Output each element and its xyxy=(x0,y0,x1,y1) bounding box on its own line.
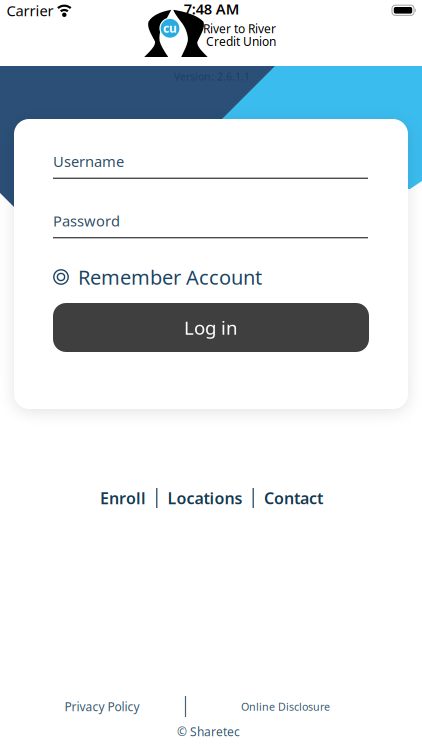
button[interactable]: Password xyxy=(53,211,368,238)
staticText: Privacy Policy xyxy=(64,698,139,714)
staticText: © Sharetec xyxy=(177,723,240,739)
staticText: Enroll xyxy=(100,487,146,509)
staticText: Contact xyxy=(264,487,323,509)
button[interactable]: Remember Account xyxy=(53,264,369,290)
staticText: Online Disclosure xyxy=(241,699,330,714)
staticText: River to River xyxy=(203,20,276,36)
button[interactable]: Online Disclosure xyxy=(241,699,330,714)
staticText: cu xyxy=(163,20,177,36)
staticText: 7:48 AM xyxy=(184,0,240,19)
button[interactable]: Privacy Policy xyxy=(64,698,139,714)
button[interactable]: Contact xyxy=(264,487,323,509)
button[interactable]: Log in xyxy=(53,303,369,352)
button[interactable]: Locations xyxy=(167,487,242,509)
staticText: Version: 2.6.1.1 xyxy=(174,69,250,83)
button[interactable]: Username xyxy=(53,152,368,179)
staticText: Locations xyxy=(167,487,242,509)
staticText: Credit Union xyxy=(206,33,276,49)
staticText: Log in xyxy=(184,315,238,340)
staticText: Remember Account xyxy=(78,264,262,290)
button[interactable]: Enroll xyxy=(100,487,146,509)
staticText: Password xyxy=(53,211,120,230)
staticText: Carrier xyxy=(6,1,53,20)
staticText: Username xyxy=(53,152,124,171)
